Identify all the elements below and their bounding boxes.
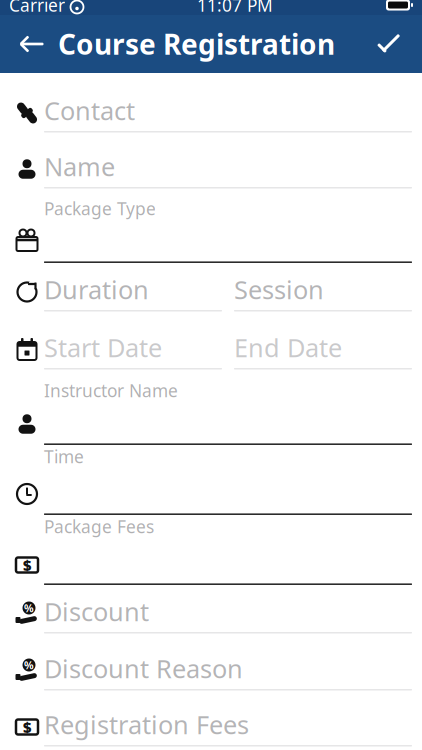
button[interactable]: Package Type [0, 197, 422, 263]
button[interactable]: Start Date [44, 331, 222, 369]
staticText: Registration Fees [44, 708, 249, 741]
button[interactable]: Back [6, 15, 58, 73]
staticText: Package Type [44, 197, 156, 220]
button[interactable]: Session [234, 273, 412, 311]
button[interactable]: Contact [0, 85, 422, 141]
staticText: Discount Reason [44, 652, 243, 685]
staticText: $ [23, 555, 31, 575]
button[interactable]: % [0, 585, 422, 643]
button[interactable]: End Date [234, 331, 412, 369]
staticText: Contact [44, 94, 135, 127]
button[interactable]: Name [0, 141, 422, 197]
staticText: Course Registration [58, 25, 335, 63]
staticText: Name [44, 150, 115, 183]
staticText: % [24, 658, 34, 672]
staticText: End Date [234, 331, 342, 364]
button[interactable]: % [0, 643, 422, 699]
staticText: Duration [44, 273, 149, 306]
button[interactable]: Duration [44, 273, 222, 311]
button[interactable]: Save [362, 15, 416, 73]
button[interactable]: Time [0, 445, 422, 515]
staticText: % [24, 601, 34, 615]
staticText: Start Date [44, 331, 162, 364]
staticText: Discount [44, 595, 149, 628]
button[interactable]: $ [0, 515, 422, 585]
staticText: Session [234, 273, 324, 306]
staticText: $ [23, 717, 31, 737]
staticText: Package Fees [44, 515, 154, 538]
staticText: 11:07 PM [197, 0, 273, 16]
staticText: Carrier [9, 0, 65, 16]
button[interactable]: $ [0, 699, 422, 750]
staticText: Instructor Name [44, 379, 178, 402]
staticText: Time [44, 445, 84, 468]
button[interactable]: Instructor Name [0, 379, 422, 445]
